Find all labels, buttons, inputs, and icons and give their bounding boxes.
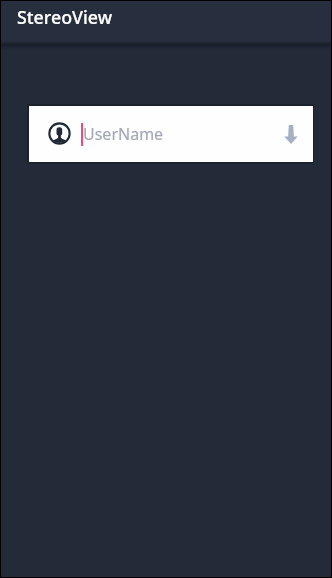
other: Account	[48, 122, 71, 145]
button[interactable]: Show saved user names	[274, 117, 308, 151]
staticText: UserName	[83, 123, 164, 145]
staticText: StereoView	[17, 5, 113, 29]
button[interactable]: Account	[29, 106, 313, 162]
